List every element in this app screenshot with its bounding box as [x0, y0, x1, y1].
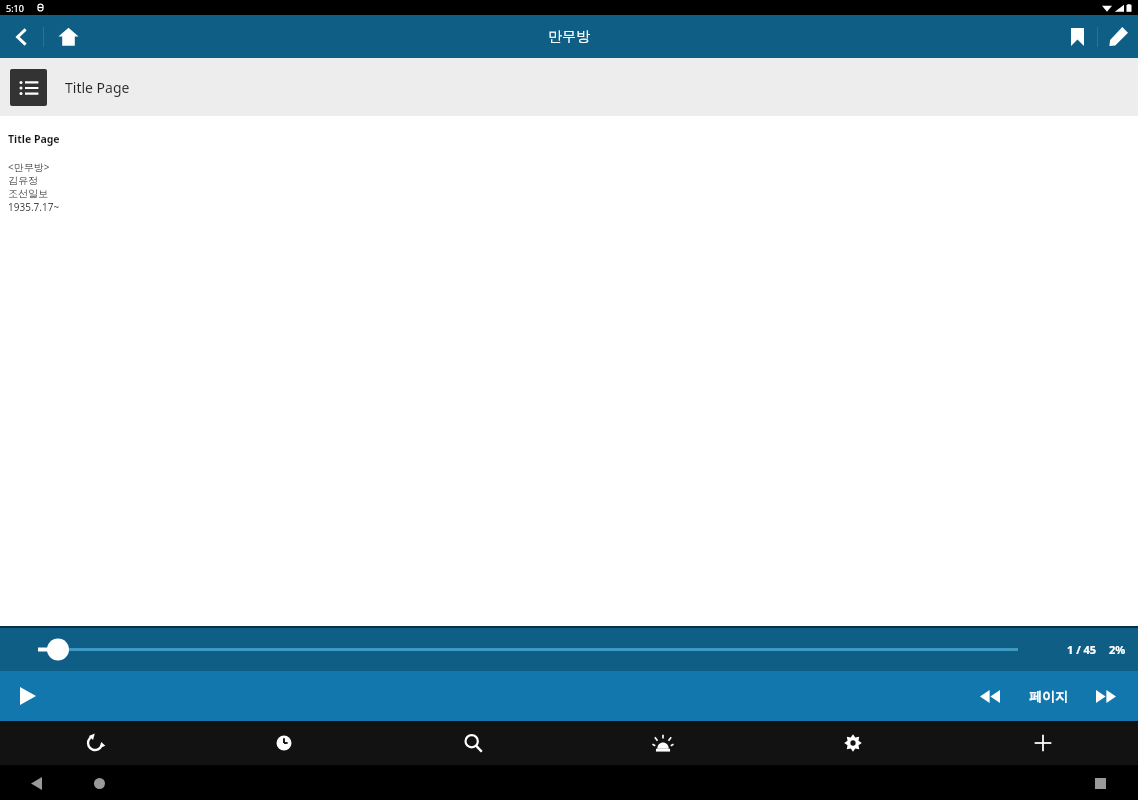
button[interactable]: Play — [0, 671, 56, 721]
staticText: 페이지 — [1029, 688, 1068, 704]
staticText: 1935.7.17~ — [8, 200, 60, 214]
button[interactable]: Brightness — [568, 721, 758, 765]
staticText: <만무방> — [8, 160, 50, 174]
button[interactable]: Bookmark — [1057, 15, 1097, 58]
button[interactable]: Back — [22, 769, 50, 797]
button[interactable]: Settings — [758, 721, 948, 765]
button[interactable]: Table of contents — [10, 69, 130, 106]
button[interactable]: Home — [44, 15, 92, 58]
button[interactable]: Add — [948, 721, 1138, 765]
staticText: 5:10 — [6, 2, 24, 14]
staticText: 김유정 — [8, 174, 38, 187]
button[interactable]: Edit — [1098, 15, 1138, 58]
button[interactable]: Clock — [189, 721, 378, 765]
button[interactable]: Rotate — [0, 721, 189, 765]
staticText: 조선일보 — [8, 187, 48, 200]
button[interactable]: Home — [85, 769, 113, 797]
other: Table of contents — [10, 69, 47, 106]
button[interactable]: 페이지 — [1012, 671, 1084, 721]
staticText: Title Page — [8, 132, 60, 146]
staticText: 1 / 45 — [1067, 642, 1097, 657]
button[interactable]: Back — [0, 15, 43, 58]
staticText: Title Page — [65, 78, 130, 97]
staticText: 2% — [1109, 642, 1126, 657]
button[interactable]: Next page — [1084, 671, 1128, 721]
button[interactable]: Search — [378, 721, 568, 765]
staticText: 만무방 — [548, 28, 590, 46]
button[interactable]: Previous page — [968, 671, 1012, 721]
button[interactable]: Recents — [1086, 769, 1114, 797]
button[interactable]: Page slider — [0, 628, 1138, 671]
